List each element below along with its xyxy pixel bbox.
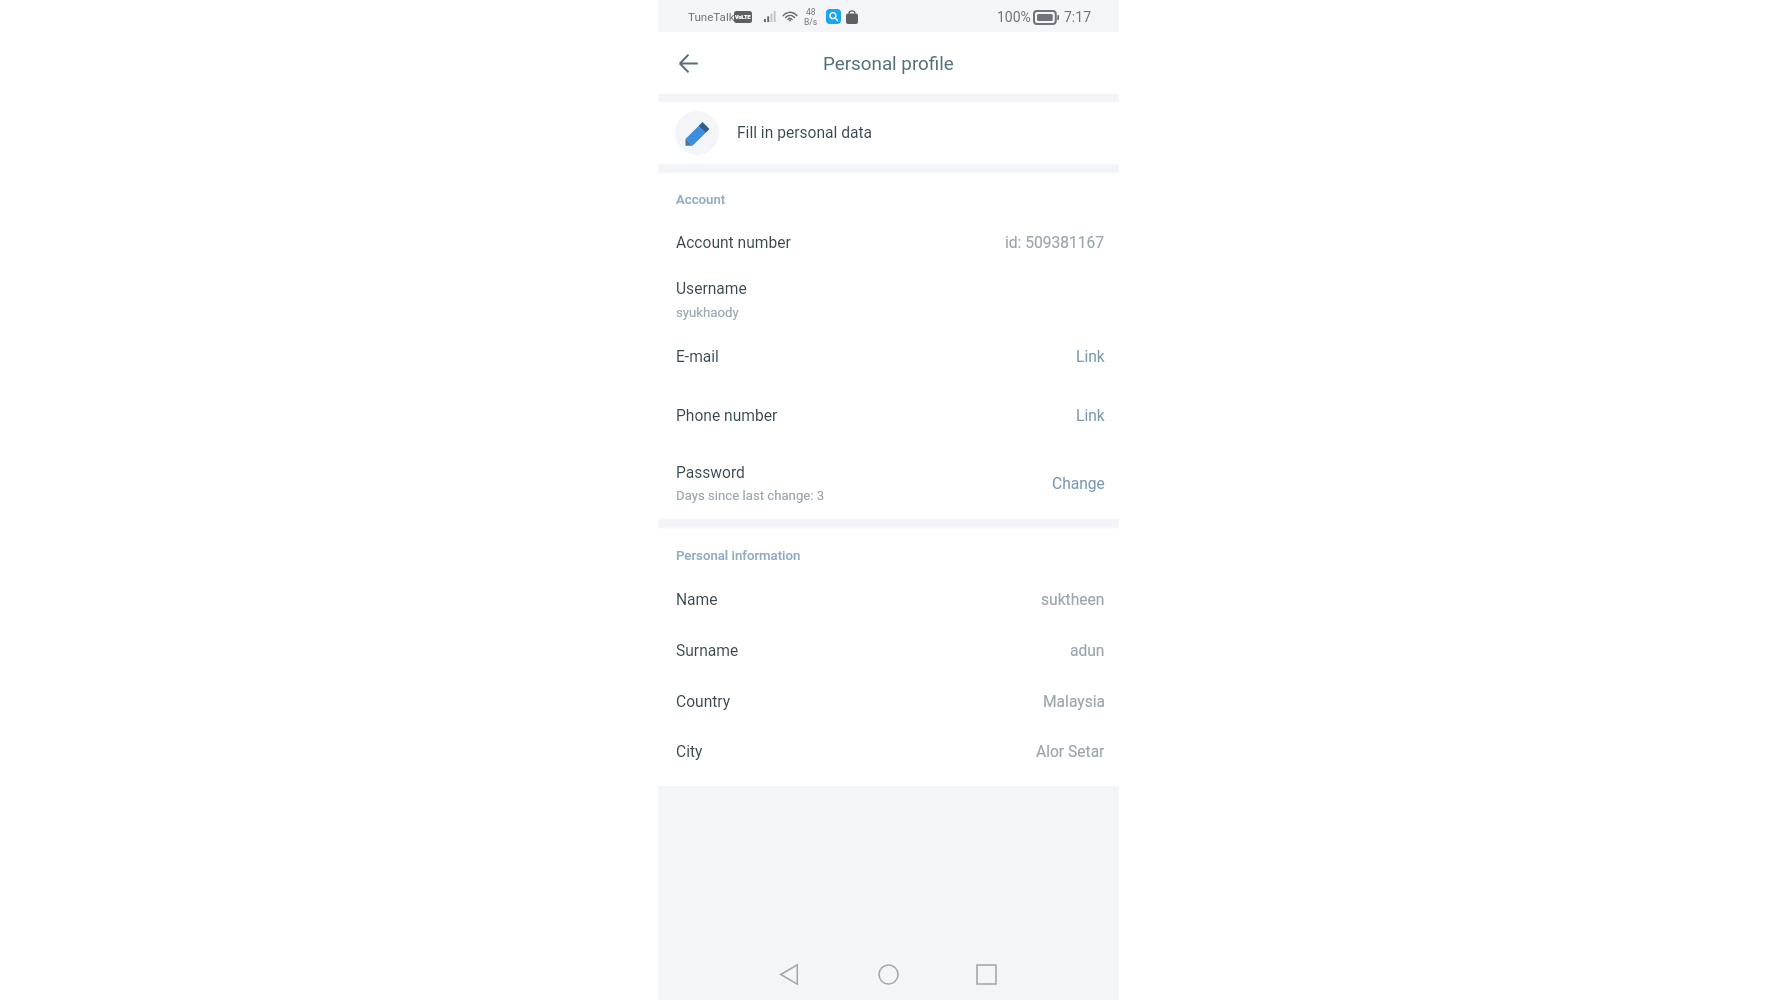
- staticText: Change: [1052, 475, 1105, 493]
- staticText: adun: [1070, 642, 1105, 660]
- staticText: Malaysia: [1043, 693, 1105, 711]
- button[interactable]: Name: [658, 575, 1119, 625]
- staticText: Account number: [676, 234, 791, 252]
- staticText: Password: [676, 464, 745, 482]
- staticText: syukhaody: [676, 305, 739, 320]
- staticText: Personal information: [676, 548, 801, 563]
- staticText: Fill in personal data: [737, 124, 872, 142]
- staticText: Phone number: [676, 407, 778, 425]
- button[interactable]: Account number: [658, 218, 1119, 268]
- staticText: suktheen: [1041, 591, 1105, 609]
- staticText: E-mail: [676, 348, 719, 366]
- staticText: id: 509381167: [1005, 234, 1105, 252]
- button[interactable]: City: [658, 727, 1119, 777]
- button[interactable]: Country: [658, 677, 1119, 727]
- staticText: Name: [676, 591, 718, 609]
- staticText: TuneTalk: [688, 10, 735, 24]
- staticText: Link: [1076, 407, 1105, 425]
- button[interactable]: Phone number: [658, 391, 1119, 441]
- button[interactable]: Home: [864, 950, 912, 998]
- staticText: VoLTE: [735, 14, 751, 20]
- staticText: Username: [676, 280, 747, 298]
- staticText: Days since last change: 3: [676, 488, 825, 503]
- button[interactable]: Fill in personal data: [658, 102, 1119, 164]
- staticText: Surname: [676, 642, 739, 660]
- staticText: Account: [676, 192, 726, 207]
- staticText: 100%: [997, 9, 1031, 25]
- button[interactable]: Surname: [658, 626, 1119, 676]
- button[interactable]: Recent apps: [962, 950, 1010, 998]
- staticText: 7:17: [1064, 9, 1091, 25]
- staticText: 48: [806, 7, 816, 17]
- button[interactable]: Back: [765, 950, 813, 998]
- button[interactable]: E-mail: [658, 332, 1119, 382]
- staticText: City: [676, 743, 703, 761]
- staticText: Alor Setar: [1036, 743, 1105, 761]
- staticText: B/s: [804, 17, 818, 27]
- staticText: Personal profile: [823, 53, 954, 75]
- button[interactable]: Password: [658, 449, 1119, 513]
- staticText: Link: [1076, 348, 1105, 366]
- button[interactable]: Back: [665, 40, 711, 86]
- staticText: Country: [676, 693, 731, 711]
- button[interactable]: Username: [658, 267, 1119, 328]
